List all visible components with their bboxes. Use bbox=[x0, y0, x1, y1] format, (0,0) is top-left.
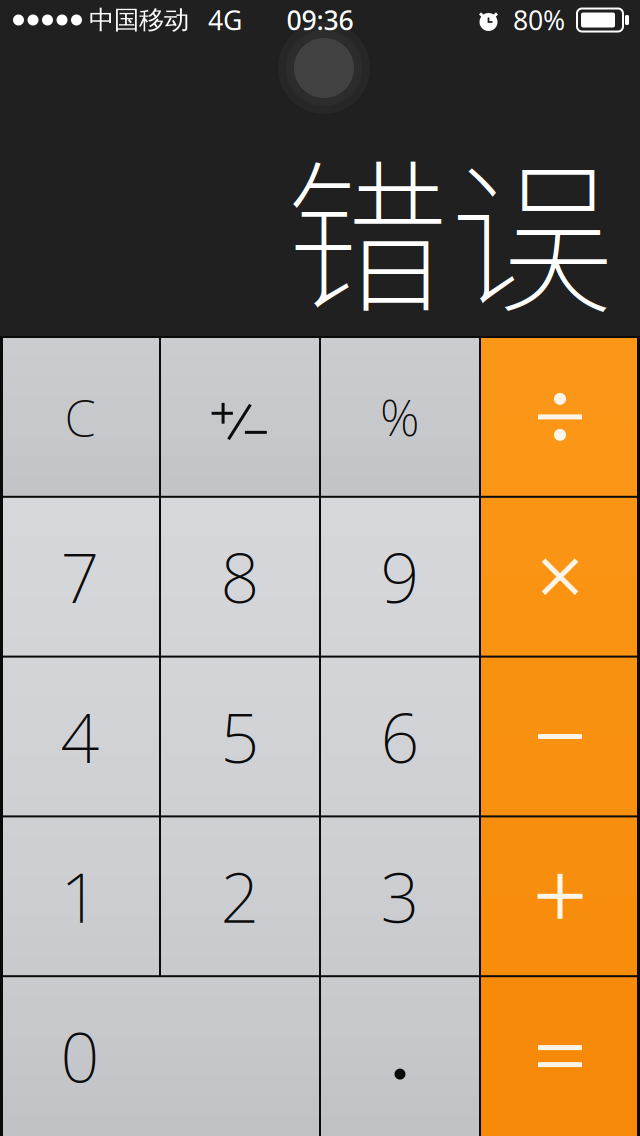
button[interactable]: Plus minus bbox=[160, 337, 320, 497]
button[interactable]: Percent bbox=[320, 337, 480, 497]
staticText: 7 bbox=[60, 531, 99, 622]
staticText: 1 bbox=[60, 851, 99, 941]
staticText: 错误 bbox=[284, 107, 614, 347]
staticText: 3 bbox=[380, 851, 419, 941]
button[interactable]: Subtract bbox=[480, 657, 640, 816]
button[interactable]: 4 bbox=[0, 657, 160, 816]
button[interactable]: 3 bbox=[320, 816, 480, 976]
button[interactable]: 9 bbox=[320, 497, 480, 657]
button[interactable]: Clear bbox=[0, 337, 160, 497]
button[interactable]: 1 bbox=[0, 816, 160, 976]
staticText: 09:36 bbox=[286, 2, 353, 38]
button[interactable]: Divide bbox=[480, 337, 640, 497]
button[interactable]: 6 bbox=[320, 657, 480, 816]
staticText: 5 bbox=[220, 691, 259, 782]
staticText: 9 bbox=[380, 531, 419, 622]
staticText: % bbox=[380, 384, 420, 450]
staticText: 8 bbox=[220, 531, 259, 622]
staticText: 6 bbox=[380, 691, 419, 782]
button[interactable]: Equals bbox=[480, 976, 640, 1136]
staticText: 0 bbox=[60, 1011, 99, 1101]
button[interactable]: Multiply bbox=[480, 497, 640, 657]
button[interactable]: 0 bbox=[0, 976, 320, 1136]
staticText: 4 bbox=[60, 691, 99, 782]
button[interactable]: Add bbox=[480, 816, 640, 976]
button[interactable]: 7 bbox=[0, 497, 160, 657]
staticText: 4G bbox=[208, 2, 242, 38]
button[interactable]: 8 bbox=[160, 497, 320, 657]
staticText: 中国移动 bbox=[89, 4, 189, 35]
staticText: 80% bbox=[513, 2, 565, 38]
staticText: 2 bbox=[220, 851, 259, 941]
button[interactable]: 5 bbox=[160, 657, 320, 816]
button[interactable]: 2 bbox=[160, 816, 320, 976]
button[interactable]: Decimal point bbox=[320, 976, 480, 1136]
staticText: C bbox=[64, 383, 95, 451]
